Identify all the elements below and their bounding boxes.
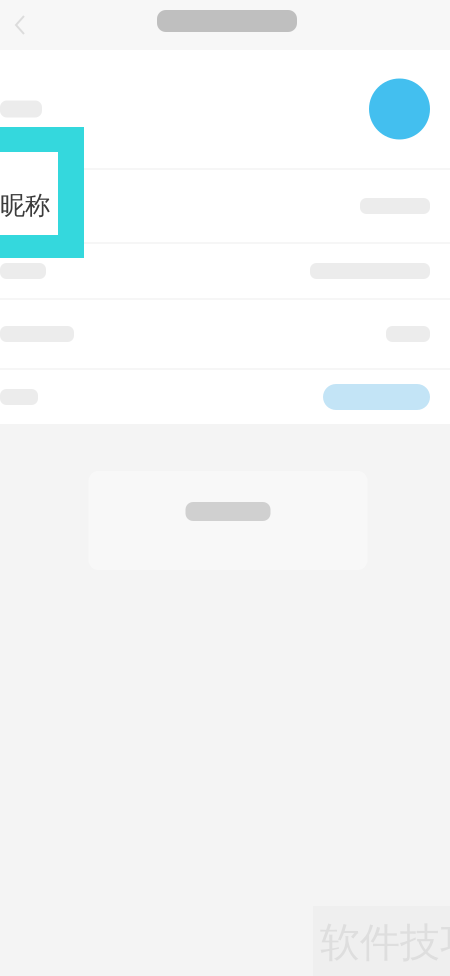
staticText: 昵称 [0, 190, 50, 221]
button[interactable] [88, 471, 367, 570]
button[interactable] [0, 244, 450, 298]
button[interactable] [0, 50, 450, 168]
button[interactable]: 昵称 [0, 170, 450, 242]
button[interactable] [0, 370, 450, 424]
staticText: 软件技巧 [320, 918, 450, 967]
button[interactable] [0, 300, 450, 368]
staticText: 昵称 [0, 190, 50, 221]
button[interactable]: Back [0, 0, 40, 50]
